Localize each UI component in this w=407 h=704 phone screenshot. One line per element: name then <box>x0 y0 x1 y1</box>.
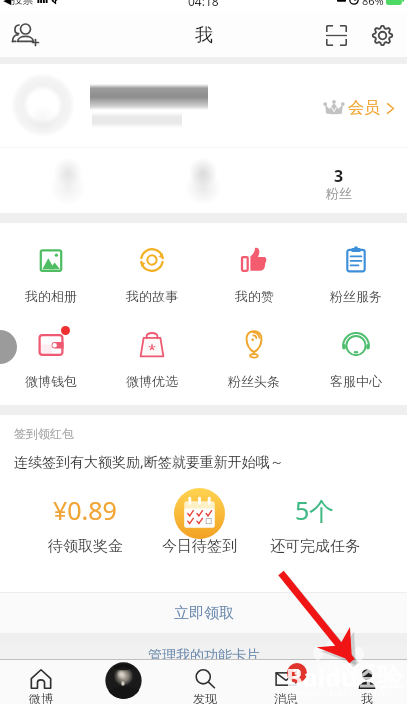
staticText: 还可完成任务 <box>270 537 360 556</box>
button[interactable] <box>0 148 135 213</box>
button[interactable]: 粉丝服务 <box>305 223 407 314</box>
staticText: 发现 <box>193 691 217 704</box>
staticText: 微博钱包 <box>25 373 77 389</box>
button[interactable]: 会员 <box>323 97 398 119</box>
button[interactable]: 我的赞 <box>203 223 305 314</box>
staticText: 客服中心 <box>330 373 382 389</box>
staticText: 签到领红包 <box>14 426 74 441</box>
staticText: 04:18 <box>188 0 219 6</box>
staticText: 我的故事 <box>126 288 178 304</box>
staticText: 我 <box>195 24 213 47</box>
staticText: ◀投票 <box>3 0 34 6</box>
staticText: 粉丝头条 <box>228 373 280 389</box>
button[interactable]: 我的故事 <box>101 223 203 314</box>
button[interactable] <box>135 148 271 213</box>
staticText: 连续签到有大额奖励,断签就要重新开始哦～ <box>14 452 284 471</box>
staticText: 立即领取 <box>174 604 234 623</box>
staticText: ¥0.89 <box>53 493 117 527</box>
button[interactable]: 发现 <box>164 660 245 704</box>
button[interactable]: Add friend <box>6 16 44 54</box>
button[interactable]: 微博 <box>0 660 82 704</box>
staticText: 我的赞 <box>235 288 274 304</box>
button[interactable]: 立即领取 <box>0 593 407 633</box>
staticText: 管理我的功能卡片 <box>148 647 260 661</box>
staticText: 经验 <box>351 661 403 694</box>
staticText: 微博优选 <box>126 373 178 389</box>
button[interactable]: 管理我的功能卡片 <box>0 645 407 659</box>
button[interactable]: 会员 <box>0 64 407 147</box>
staticText: 会员 <box>348 98 380 118</box>
button[interactable]: Scan QR code <box>319 18 353 52</box>
button[interactable]: ¥0.89 <box>28 487 142 579</box>
staticText: 我的相册 <box>25 288 77 304</box>
button[interactable]: 微博优选 <box>101 314 203 405</box>
staticText: 今日待签到 <box>162 537 237 556</box>
button[interactable]: Settings <box>365 18 399 52</box>
button[interactable]: 我 <box>326 660 407 704</box>
staticText: jingyan.baidu.com <box>289 684 385 699</box>
staticText: 3 <box>293 664 301 682</box>
button[interactable]: 我的相册 <box>0 223 101 314</box>
button[interactable]: 3 <box>271 148 407 213</box>
staticText: 消息 <box>274 691 298 704</box>
button[interactable]: 今日待签到 <box>142 487 257 579</box>
button[interactable]: 微博钱包 <box>0 314 101 405</box>
staticText: 微博 <box>29 691 53 704</box>
staticText: 5个 <box>295 493 335 527</box>
staticText: 待领取奖金 <box>48 537 123 556</box>
button[interactable]: Assistive touch <box>0 330 17 364</box>
staticText: 粉丝 <box>326 185 352 201</box>
staticText: 粉丝服务 <box>330 288 382 304</box>
staticText: 3 <box>334 165 344 187</box>
button[interactable]: 5个 <box>257 487 372 579</box>
staticText: 我 <box>361 691 373 704</box>
button[interactable]: 客服中心 <box>305 314 407 405</box>
button[interactable]: 粉丝头条 <box>203 314 305 405</box>
button[interactable]: 消息 <box>245 660 326 704</box>
staticText: Baidu <box>286 660 358 694</box>
staticText: 86% <box>362 0 384 6</box>
button[interactable]: Compose post <box>82 660 164 704</box>
